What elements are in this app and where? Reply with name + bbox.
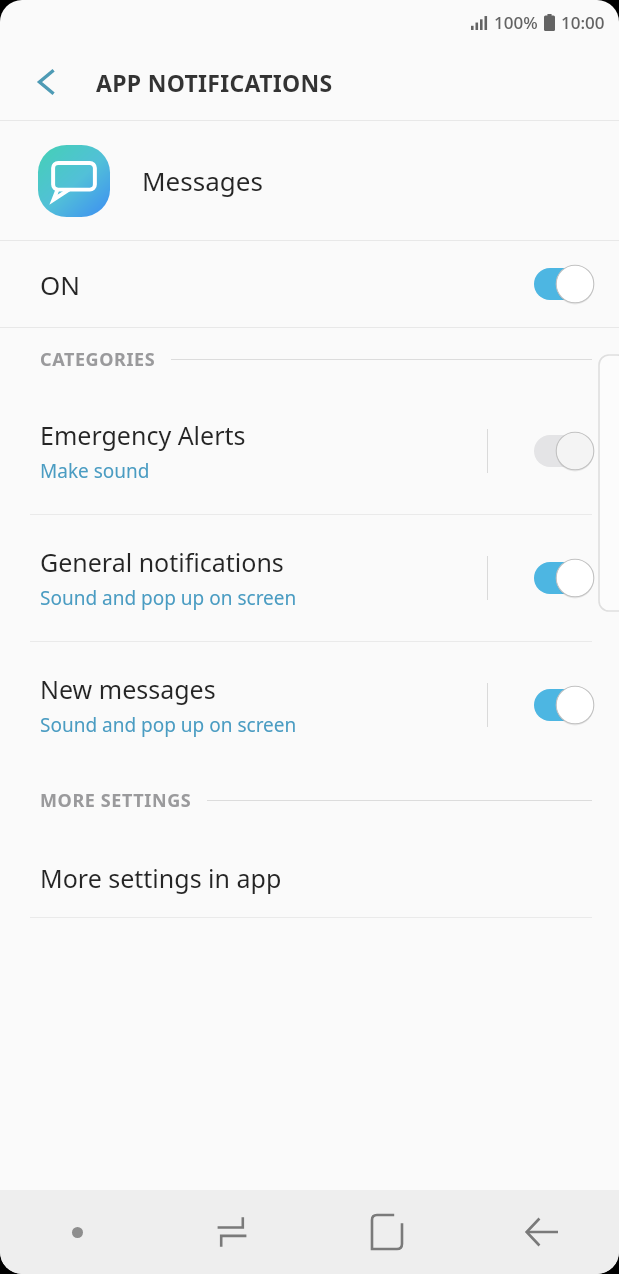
button[interactable]: Messages (0, 121, 619, 240)
button[interactable]: Switch on (534, 264, 592, 304)
button[interactable]: Home (359, 1204, 415, 1260)
staticText: Sound and pop up on screen (40, 712, 297, 738)
button[interactable]: Back (22, 57, 72, 107)
staticText: ON (40, 267, 81, 302)
staticText: New messages (40, 672, 216, 706)
button[interactable]: New messages (0, 642, 619, 768)
staticText: MORE SETTINGS (40, 788, 192, 813)
staticText: CATEGORIES (40, 347, 156, 372)
staticText: General notifications (40, 545, 284, 579)
button[interactable]: Switch off (534, 431, 592, 471)
staticText: 100% (494, 11, 538, 34)
staticText: More settings in app (40, 861, 282, 895)
staticText: Messages (142, 163, 263, 198)
button[interactable]: Back (514, 1204, 570, 1260)
button[interactable]: Switch on (534, 558, 592, 598)
staticText: Make sound (40, 458, 150, 484)
staticText: APP NOTIFICATIONS (96, 67, 333, 98)
staticText: Sound and pop up on screen (40, 585, 297, 611)
button[interactable]: Emergency Alerts (0, 388, 619, 514)
button[interactable]: Switch on (534, 685, 592, 725)
button[interactable]: More settings in app (0, 839, 619, 917)
button[interactable]: ON (0, 241, 619, 327)
button[interactable]: Menu (55, 1210, 99, 1254)
button[interactable]: Recents (204, 1204, 260, 1260)
staticText: 10:00 (561, 11, 605, 34)
button[interactable]: General notifications (0, 515, 619, 641)
staticText: Emergency Alerts (40, 418, 246, 452)
